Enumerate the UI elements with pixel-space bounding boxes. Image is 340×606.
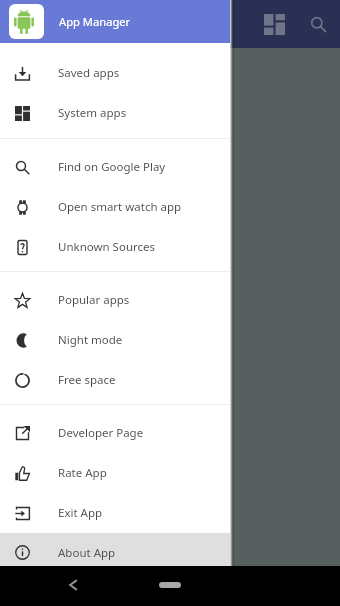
staticText: Unknown Sources [58, 239, 156, 255]
button[interactable]: Developer Page [0, 413, 230, 453]
button[interactable]: Popular apps [0, 280, 230, 320]
button[interactable]: Open smart watch app [0, 187, 230, 227]
button[interactable]: Exit App [0, 493, 230, 533]
button[interactable]: Free space [0, 360, 230, 400]
staticText: Exit App [58, 505, 103, 521]
button[interactable]: Search [296, 0, 340, 48]
staticText: Developer Page [58, 425, 144, 441]
button[interactable]: System apps [0, 93, 230, 133]
button[interactable]: Unknown Sources [0, 227, 230, 267]
staticText: Open smart watch app [58, 199, 182, 215]
staticText: Saved apps [58, 65, 120, 81]
button[interactable]: Layout [252, 0, 296, 48]
staticText: App Manager [59, 14, 131, 29]
button[interactable]: Rate App [0, 453, 230, 493]
staticText: About App [58, 545, 116, 561]
button[interactable]: Home [159, 582, 181, 588]
button[interactable]: Back [58, 570, 88, 600]
button[interactable]: About App [0, 533, 230, 566]
button[interactable]: Night mode [0, 320, 230, 360]
staticText: Find on Google Play [58, 159, 166, 175]
staticText: Night mode [58, 332, 123, 348]
staticText: System apps [58, 105, 127, 121]
staticText: Rate App [58, 465, 107, 481]
staticText: Free space [58, 372, 116, 388]
button[interactable]: Saved apps [0, 53, 230, 93]
staticText: Popular apps [58, 292, 130, 308]
button[interactable]: Find on Google Play [0, 147, 230, 187]
